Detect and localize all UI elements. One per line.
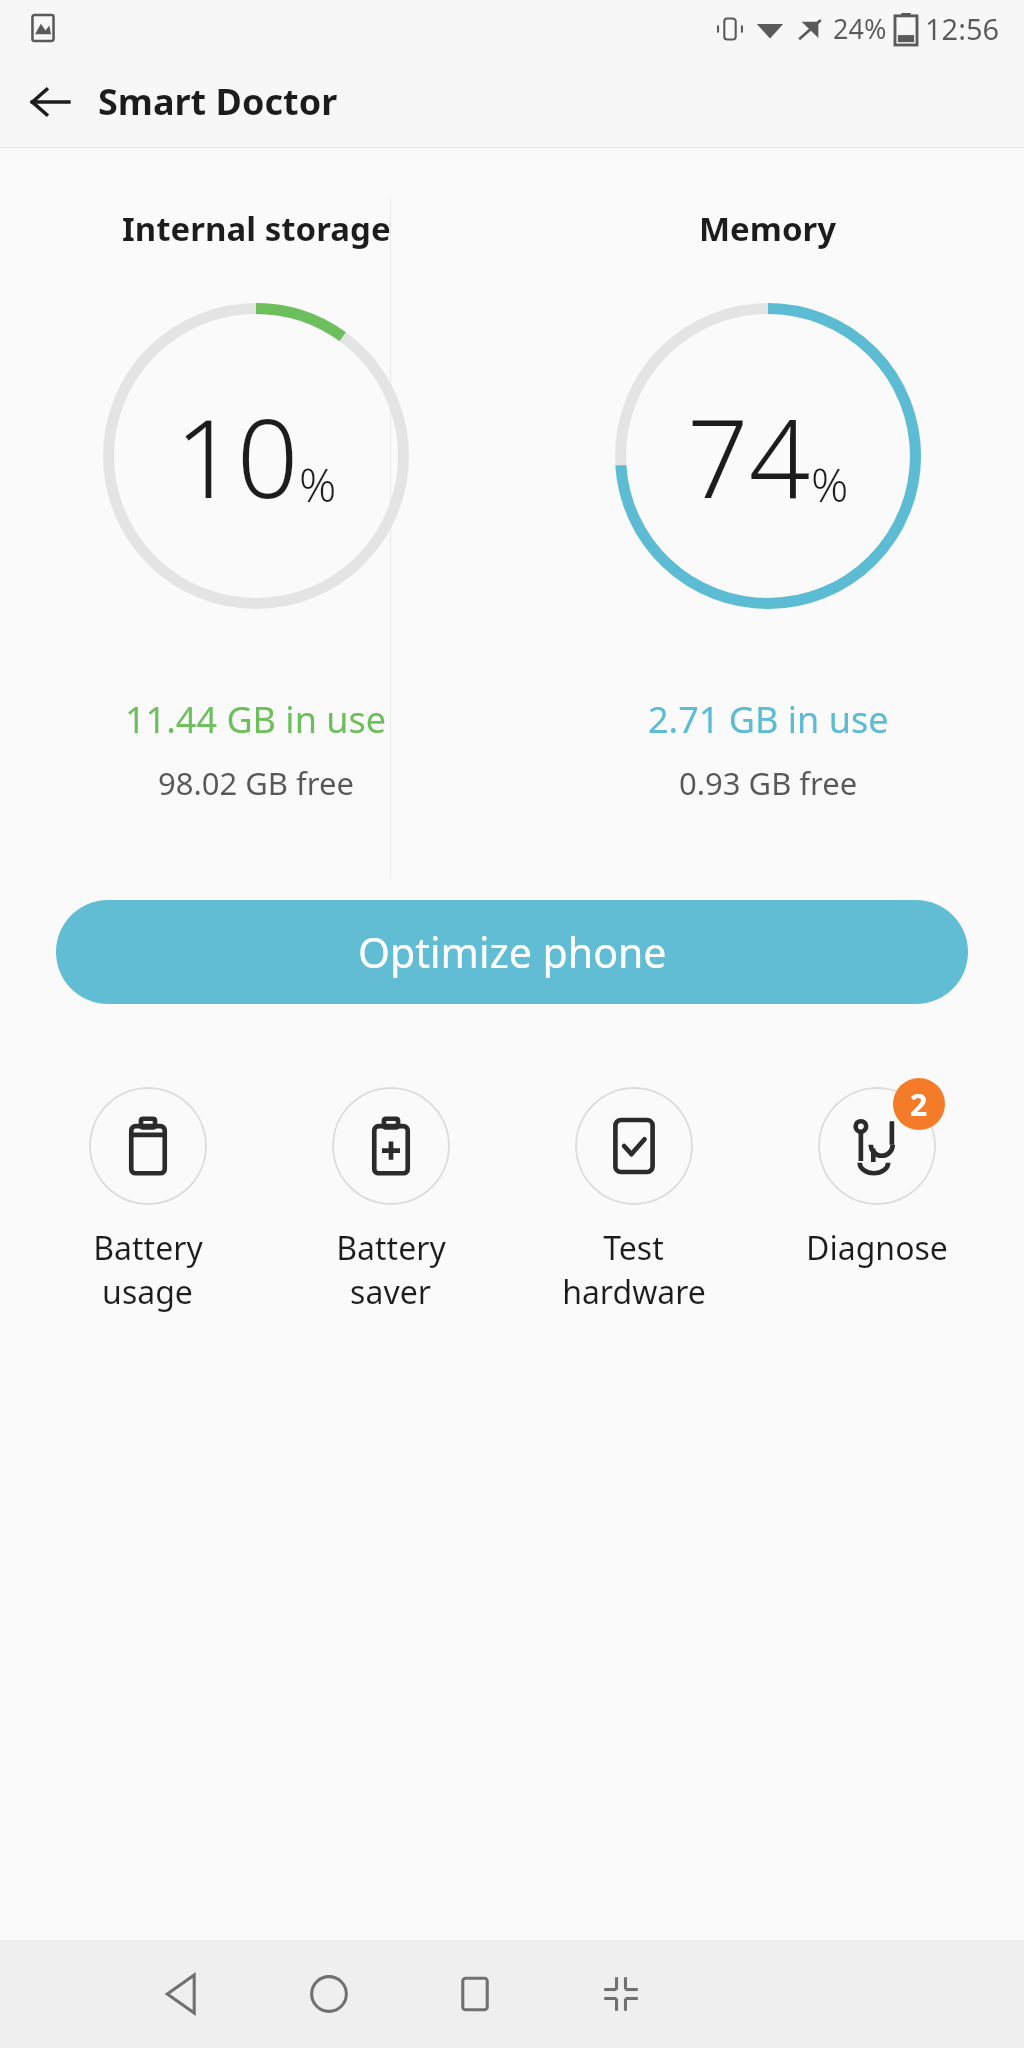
staticText: Optimize phone <box>358 924 667 980</box>
staticText: Internal storage <box>122 206 391 251</box>
button[interactable]: Optimize phone <box>56 900 968 1004</box>
staticText: Memory <box>699 206 837 251</box>
button[interactable]: Battery <box>26 1078 269 1314</box>
staticText: 2.71 GB in use <box>648 695 889 744</box>
button[interactable]: Home <box>256 1940 402 2048</box>
staticText: Smart Doctor <box>98 77 338 126</box>
staticText: usage <box>102 1270 193 1314</box>
staticText: saver <box>350 1270 431 1314</box>
staticText: 98.02 GB free <box>158 762 354 804</box>
button[interactable]: Battery <box>269 1078 512 1314</box>
button[interactable]: Back <box>14 66 86 138</box>
staticText: 2 <box>910 1084 928 1125</box>
button[interactable]: Test <box>512 1078 755 1314</box>
staticText: hardware <box>562 1270 706 1314</box>
staticText: Test <box>603 1226 664 1270</box>
staticText: 74 <box>687 383 811 530</box>
staticText: 10 <box>175 383 299 530</box>
button[interactable]: Back <box>110 1940 256 2048</box>
staticText: 0.93 GB free <box>679 762 858 804</box>
button[interactable]: 2 <box>755 1078 998 1270</box>
button[interactable]: Collapse <box>548 1940 694 2048</box>
button[interactable]: Recents <box>402 1940 548 2048</box>
staticText: 11.44 GB in use <box>125 695 387 744</box>
staticText: % <box>811 453 849 516</box>
staticText: Battery <box>336 1226 446 1270</box>
staticText: Battery <box>93 1226 203 1270</box>
staticText: Diagnose <box>806 1226 948 1270</box>
staticText: 12:56 <box>925 9 1000 48</box>
staticText: 24% <box>833 10 887 47</box>
staticText: % <box>299 453 337 516</box>
